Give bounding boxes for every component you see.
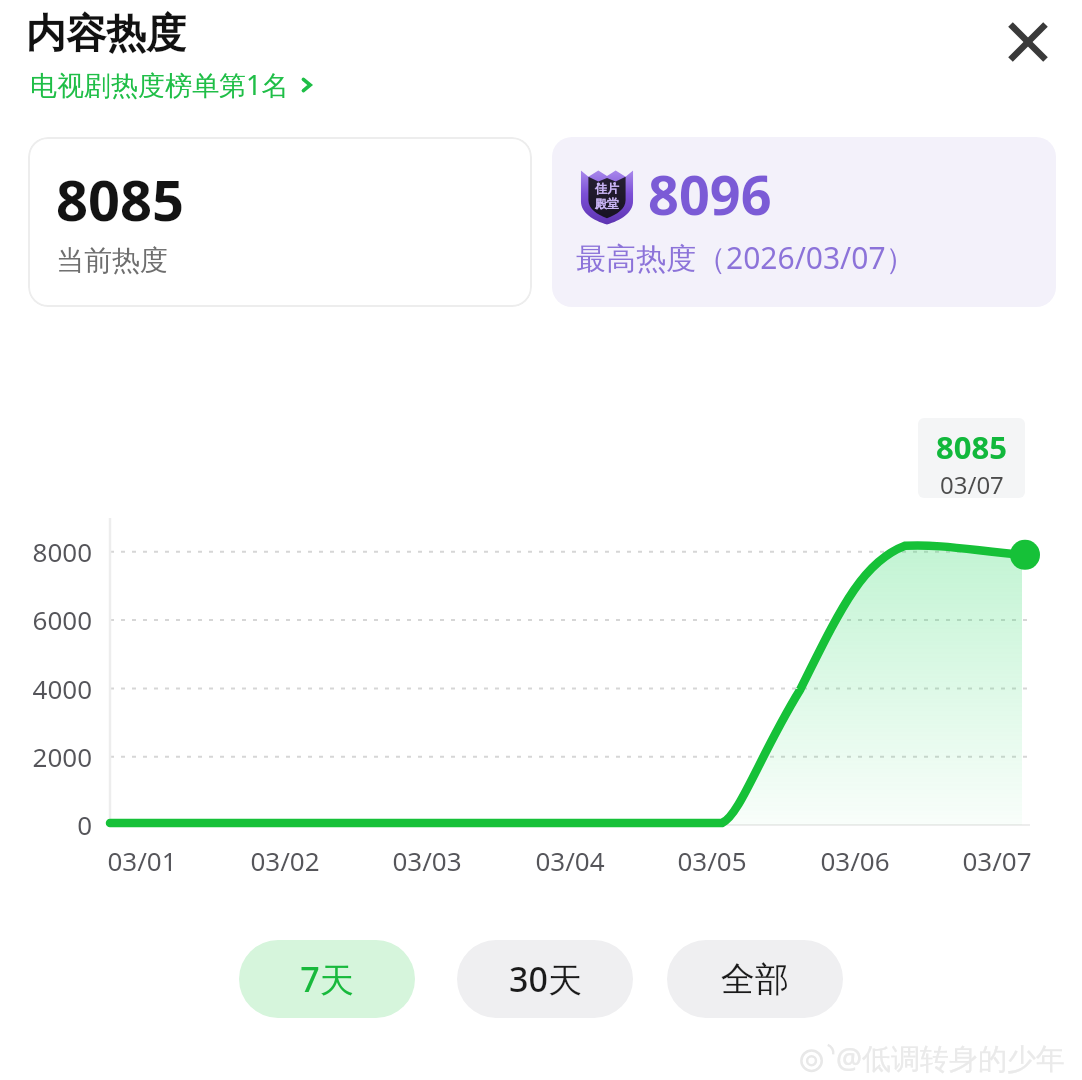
staticText: 8085	[56, 161, 185, 237]
staticText: 0	[77, 807, 92, 842]
staticText: 03/04	[535, 843, 605, 878]
staticText: 03/02	[250, 843, 320, 878]
staticText: 03/07	[962, 843, 1032, 878]
button[interactable]: Close	[986, 0, 1070, 84]
staticText: 30天	[509, 956, 582, 1002]
staticText: 03/07	[940, 468, 1004, 498]
staticText: 电视剧热度榜单第1名	[30, 66, 289, 103]
button[interactable]: 全部	[667, 940, 843, 1018]
staticText: 8096	[648, 157, 772, 231]
staticText: 03/05	[677, 843, 747, 878]
staticText: 全部	[721, 958, 789, 1001]
staticText: 6000	[32, 602, 92, 637]
staticText: 最高热度（2026/03/07）	[576, 237, 916, 278]
staticText: 佳片	[595, 181, 619, 196]
staticText: @低调转身的少年	[836, 1038, 1066, 1078]
staticText: 03/03	[392, 843, 462, 878]
staticText: 03/01	[107, 843, 177, 878]
staticText: 2000	[32, 739, 92, 774]
button[interactable]: 30天	[457, 940, 633, 1018]
button[interactable]: 电视剧热度榜单第1名	[28, 64, 319, 105]
staticText: 7天	[300, 956, 354, 1002]
staticText: 03/06	[820, 843, 890, 878]
staticText: 4000	[32, 671, 92, 706]
button[interactable]: 佳片	[552, 137, 1056, 307]
staticText: 当前热度	[56, 243, 168, 278]
staticText: 内容热度	[26, 8, 186, 58]
staticText: 殿堂	[595, 196, 619, 211]
button[interactable]: 8085	[28, 137, 532, 307]
staticText: 8000	[32, 534, 92, 569]
button[interactable]: 7天	[239, 940, 415, 1018]
staticText: 8085	[936, 426, 1007, 468]
